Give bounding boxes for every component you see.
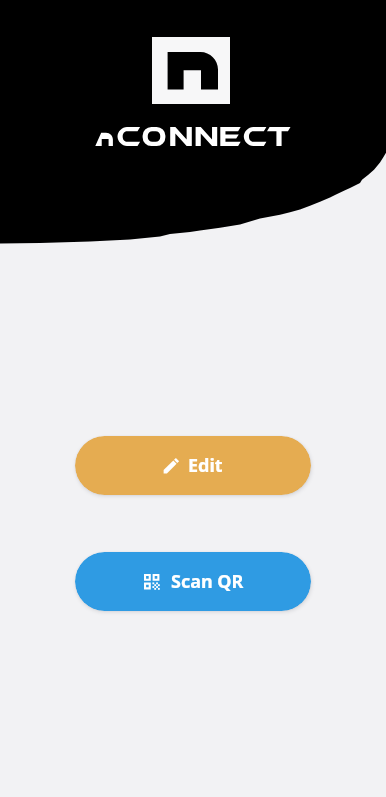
button[interactable]: Edit	[75, 436, 311, 495]
staticText: Scan QR	[171, 569, 244, 594]
other: Edit	[161, 455, 182, 476]
button[interactable]: Scan QR code	[75, 552, 311, 611]
other: Scan QR code	[144, 574, 160, 590]
staticText: Edit	[188, 453, 223, 478]
